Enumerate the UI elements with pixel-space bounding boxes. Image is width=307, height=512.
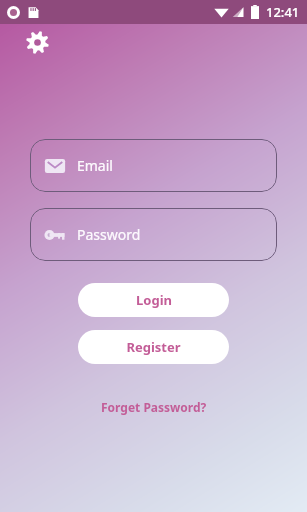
staticText: Email bbox=[77, 156, 113, 175]
button[interactable]: Password bbox=[30, 208, 277, 261]
staticText: 12:41 bbox=[266, 3, 300, 21]
button[interactable]: Email bbox=[30, 139, 277, 192]
staticText: Login bbox=[136, 291, 172, 309]
button[interactable]: Forget Password? bbox=[91, 394, 217, 420]
button[interactable]: Settings bbox=[24, 29, 50, 55]
button[interactable]: Register bbox=[78, 330, 229, 364]
staticText: Password bbox=[77, 225, 141, 244]
staticText: Forget Password? bbox=[101, 399, 207, 415]
staticText: Register bbox=[126, 338, 181, 356]
button[interactable]: Login bbox=[78, 283, 229, 317]
